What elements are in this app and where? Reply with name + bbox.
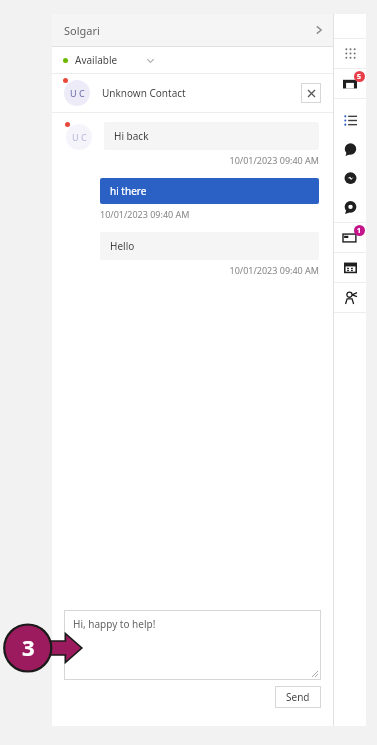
staticText: Solgari bbox=[64, 23, 100, 38]
button[interactable]: Close bbox=[301, 83, 321, 103]
button[interactable]: Available bbox=[52, 47, 333, 73]
button[interactable]: Expand bbox=[305, 16, 333, 44]
button[interactable]: Chat bbox=[334, 135, 366, 164]
staticText: Hi back bbox=[114, 129, 149, 143]
button[interactable]: Payments bbox=[334, 223, 366, 252]
staticText: U C bbox=[72, 131, 87, 143]
button[interactable]: Hi, happy to help! bbox=[64, 610, 321, 680]
staticText: Send bbox=[286, 690, 310, 704]
button[interactable]: Send bbox=[275, 686, 321, 708]
staticText: 10/01/2023 09:40 AM bbox=[104, 154, 319, 166]
staticText: Available bbox=[75, 53, 118, 67]
staticText: 1 bbox=[357, 226, 362, 236]
button[interactable]: Contacts bbox=[334, 283, 366, 312]
staticText: Unknown Contact bbox=[102, 86, 301, 100]
staticText: Hello bbox=[110, 239, 135, 253]
button[interactable]: WhatsApp bbox=[334, 193, 366, 222]
button[interactable]: Inbox bbox=[334, 69, 366, 98]
staticText: 10/01/2023 09:40 AM bbox=[100, 208, 190, 220]
button[interactable]: hi there bbox=[100, 178, 319, 204]
staticText: U C bbox=[70, 87, 85, 99]
button[interactable]: Hi back bbox=[104, 122, 319, 150]
button[interactable]: Calendar bbox=[334, 253, 366, 282]
staticText: Hi, happy to help! bbox=[73, 617, 156, 631]
staticText: 3 bbox=[22, 632, 35, 662]
button[interactable]: Hello bbox=[100, 232, 319, 260]
button[interactable]: Messenger bbox=[334, 164, 366, 193]
button[interactable]: Apps bbox=[334, 39, 366, 68]
staticText: 10/01/2023 09:40 AM bbox=[100, 264, 319, 276]
staticText: 5 bbox=[357, 72, 362, 82]
button[interactable]: Queues bbox=[334, 106, 366, 135]
staticText: hi there bbox=[110, 184, 147, 198]
